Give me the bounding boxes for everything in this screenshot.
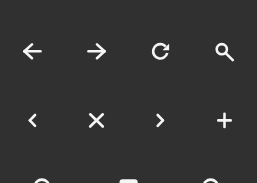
button[interactable]: Add <box>193 86 257 155</box>
button[interactable]: Back <box>0 17 64 86</box>
button[interactable]: Forward <box>65 17 129 86</box>
button[interactable]: Circle <box>179 152 243 183</box>
button[interactable]: Next <box>128 86 192 155</box>
button[interactable]: Close <box>65 86 129 155</box>
button[interactable]: Search <box>193 17 257 86</box>
button[interactable]: Previous <box>0 86 64 155</box>
button[interactable]: Stop <box>97 152 161 183</box>
button[interactable]: Refresh <box>128 17 192 86</box>
button[interactable]: Record <box>10 152 74 183</box>
